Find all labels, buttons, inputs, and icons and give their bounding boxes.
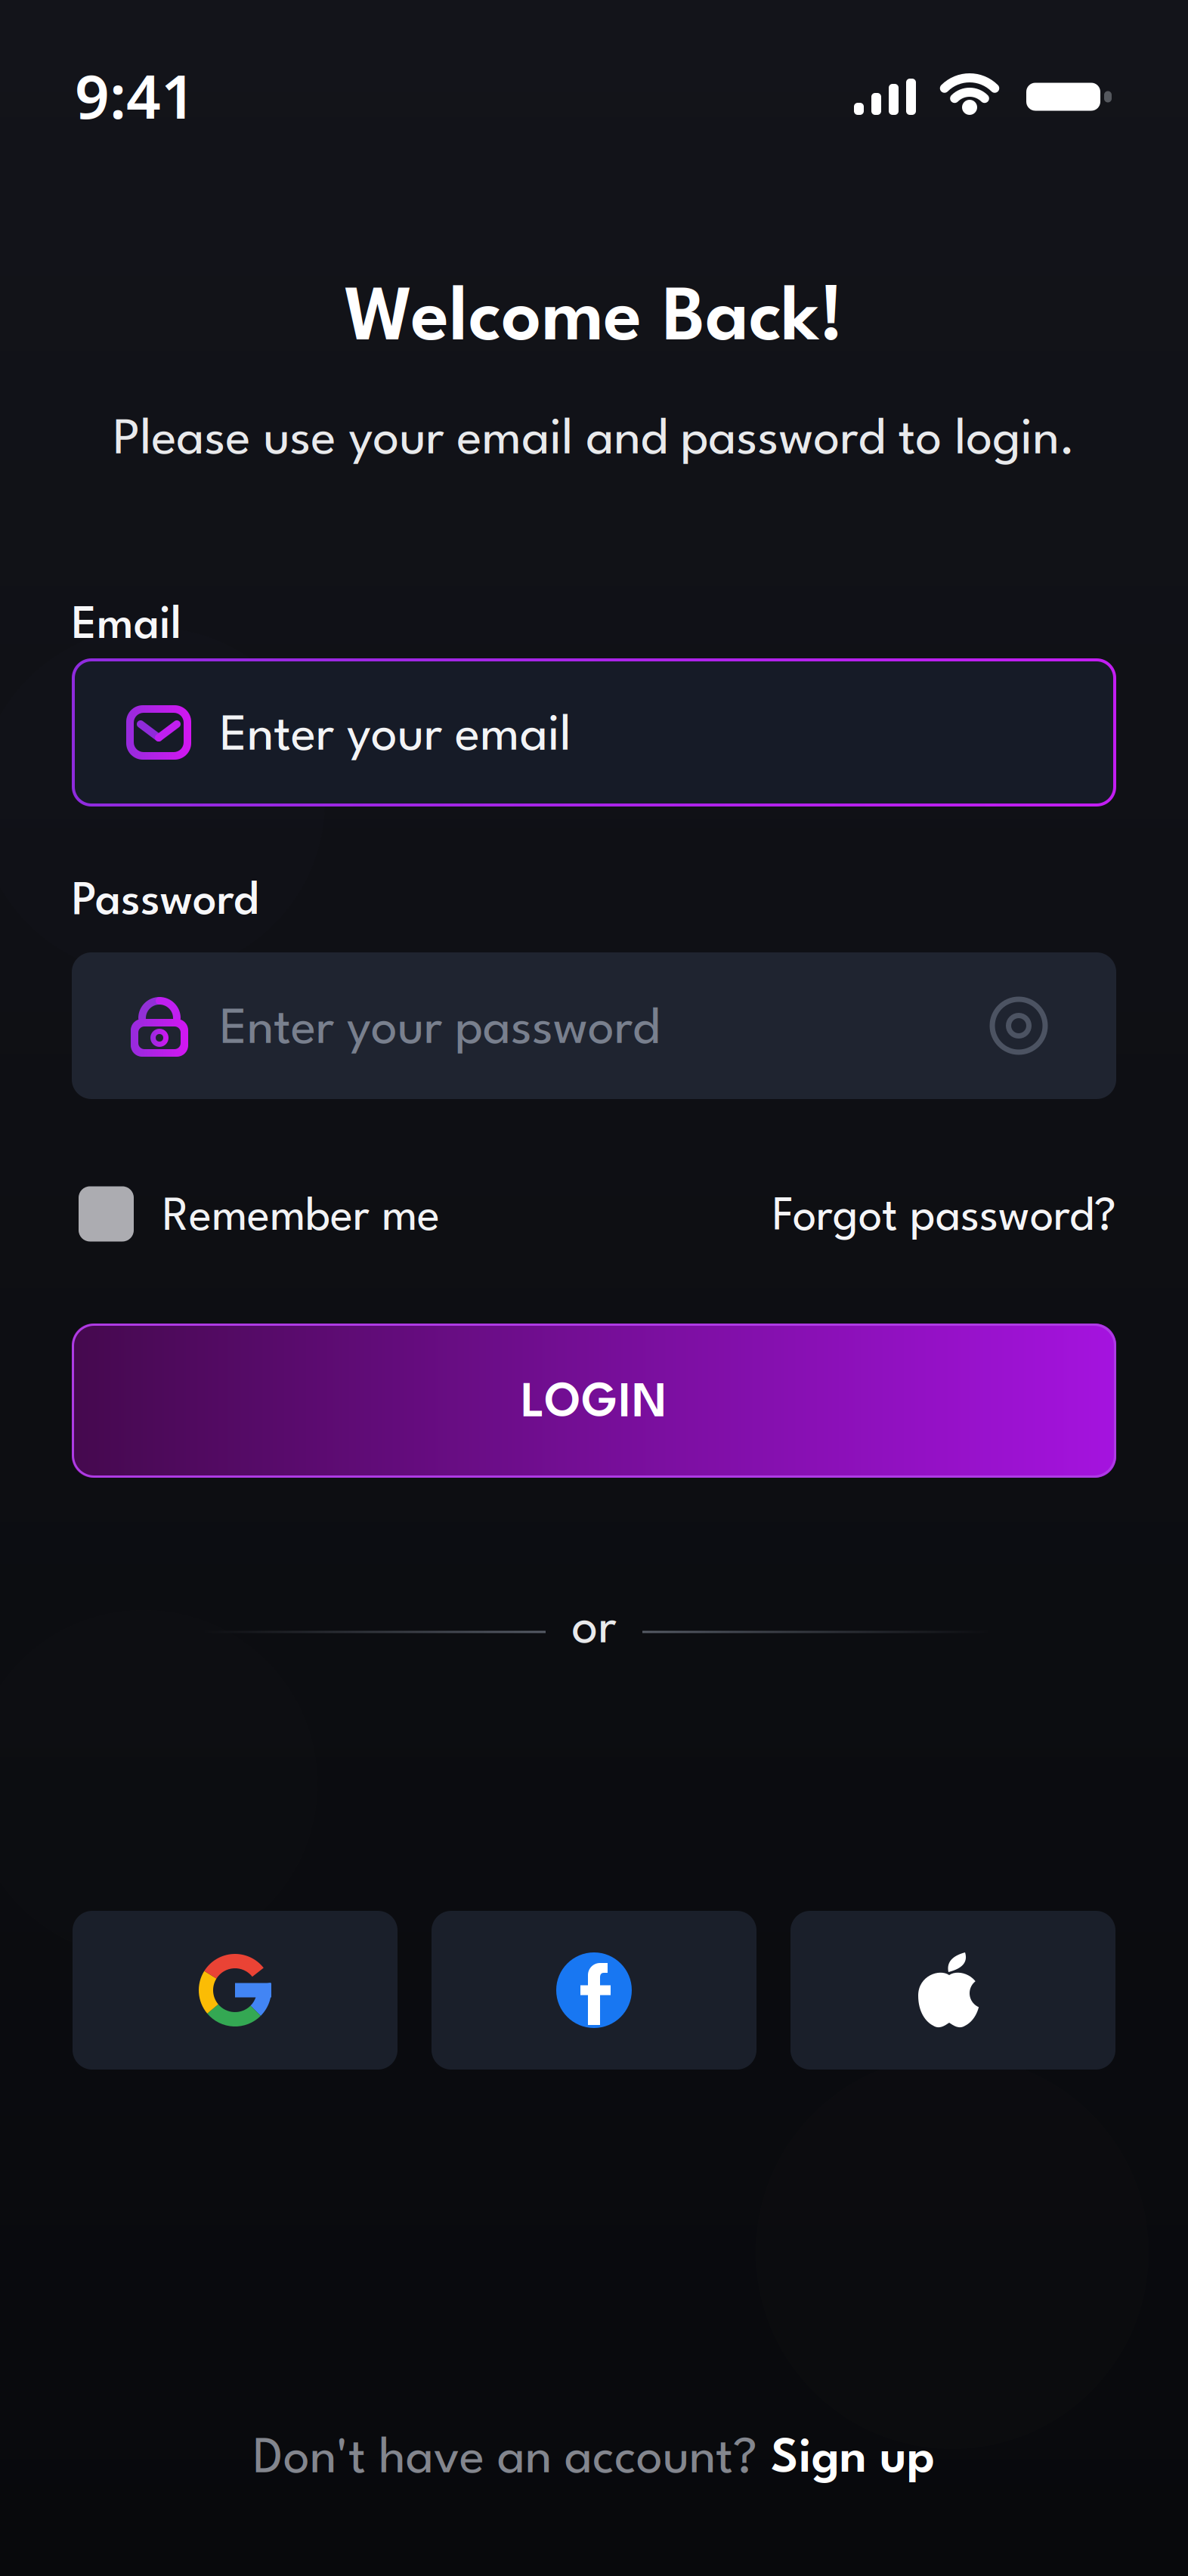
staticText: 9:41 <box>75 55 196 135</box>
button[interactable]: Sign up <box>771 2436 935 2483</box>
staticText: Enter your email <box>220 713 571 761</box>
staticText: or <box>572 1606 616 1654</box>
staticText: Welcome Back! <box>344 284 844 357</box>
button[interactable]: Continue with Apple <box>790 1911 1115 2070</box>
button[interactable]: LOGIN <box>72 1324 1116 1478</box>
button[interactable]: Enter your password <box>72 952 1116 1099</box>
staticText: Forgot password? <box>772 1197 1116 1240</box>
staticText: Remember me <box>162 1197 440 1240</box>
button[interactable]: Continue with Facebook <box>432 1911 756 2070</box>
button[interactable]: Remember me <box>72 1186 440 1242</box>
staticText: Sign up <box>771 2436 935 2483</box>
staticText: LOGIN <box>521 1382 667 1427</box>
button[interactable]: Continue with Google <box>73 1911 398 2070</box>
staticText: Password <box>72 881 258 924</box>
button[interactable]: Forgot password? <box>772 1192 1116 1236</box>
staticText: Enter your password <box>220 1006 660 1054</box>
staticText: Please use your email and password to lo… <box>113 417 1075 465</box>
staticText: Email <box>72 605 181 648</box>
button[interactable]: Enter your email <box>72 658 1116 807</box>
staticText: Don't have an account? <box>253 2435 757 2484</box>
